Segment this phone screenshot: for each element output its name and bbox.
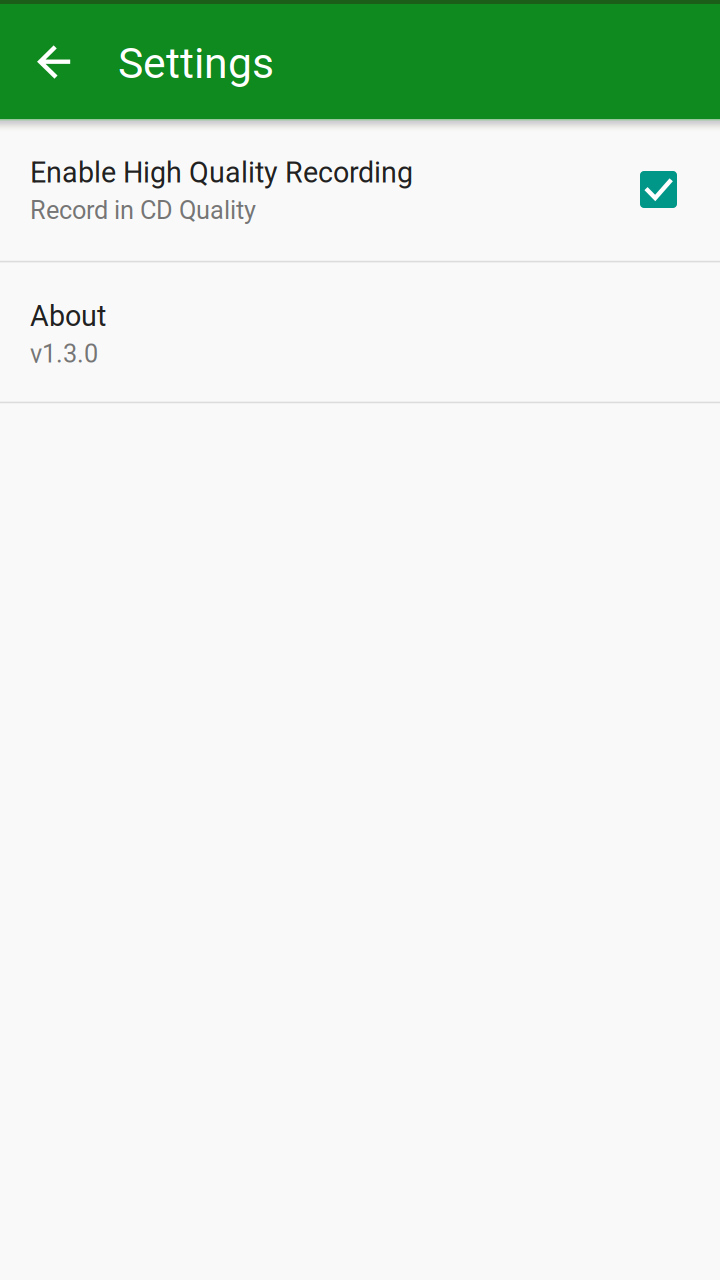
staticText: Settings <box>118 38 274 88</box>
button[interactable]: About <box>0 262 720 403</box>
staticText: About <box>30 299 106 333</box>
staticText: Enable High Quality Recording <box>30 156 413 190</box>
button[interactable]: Enable High Quality Recording <box>0 119 720 262</box>
staticText: Record in CD Quality <box>30 196 256 225</box>
staticText: v1.3.0 <box>30 339 98 369</box>
button[interactable]: Back <box>18 24 92 98</box>
